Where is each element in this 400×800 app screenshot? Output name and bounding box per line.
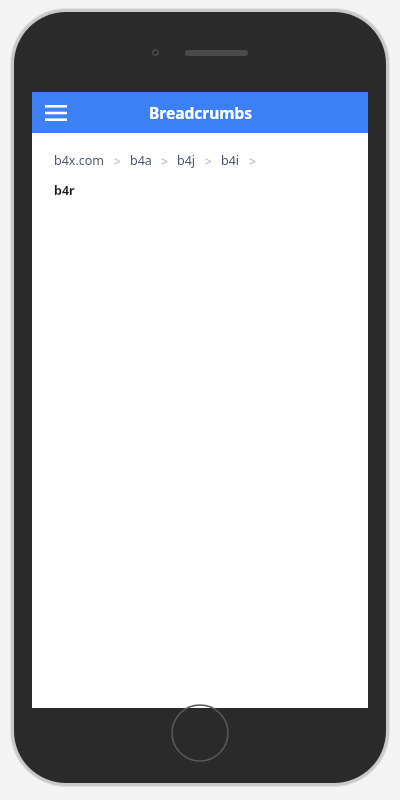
staticText: Breadcrumbs: [149, 102, 252, 123]
button[interactable]: Open navigation menu: [36, 92, 76, 133]
staticText: >: [249, 153, 256, 169]
staticText: >: [205, 153, 212, 169]
staticText: b4a: [130, 152, 152, 169]
staticText: b4j: [177, 152, 196, 169]
staticText: b4i: [221, 152, 240, 169]
button[interactable]: b4j: [177, 152, 196, 169]
button[interactable]: b4a: [130, 152, 152, 169]
staticText: b4x.com: [54, 152, 105, 169]
staticText: b4r: [54, 182, 75, 199]
staticText: >: [161, 153, 168, 169]
button[interactable]: b4i: [221, 152, 240, 169]
staticText: >: [114, 153, 121, 169]
button[interactable]: b4x.com: [54, 152, 105, 169]
button[interactable]: b4r: [54, 182, 75, 199]
